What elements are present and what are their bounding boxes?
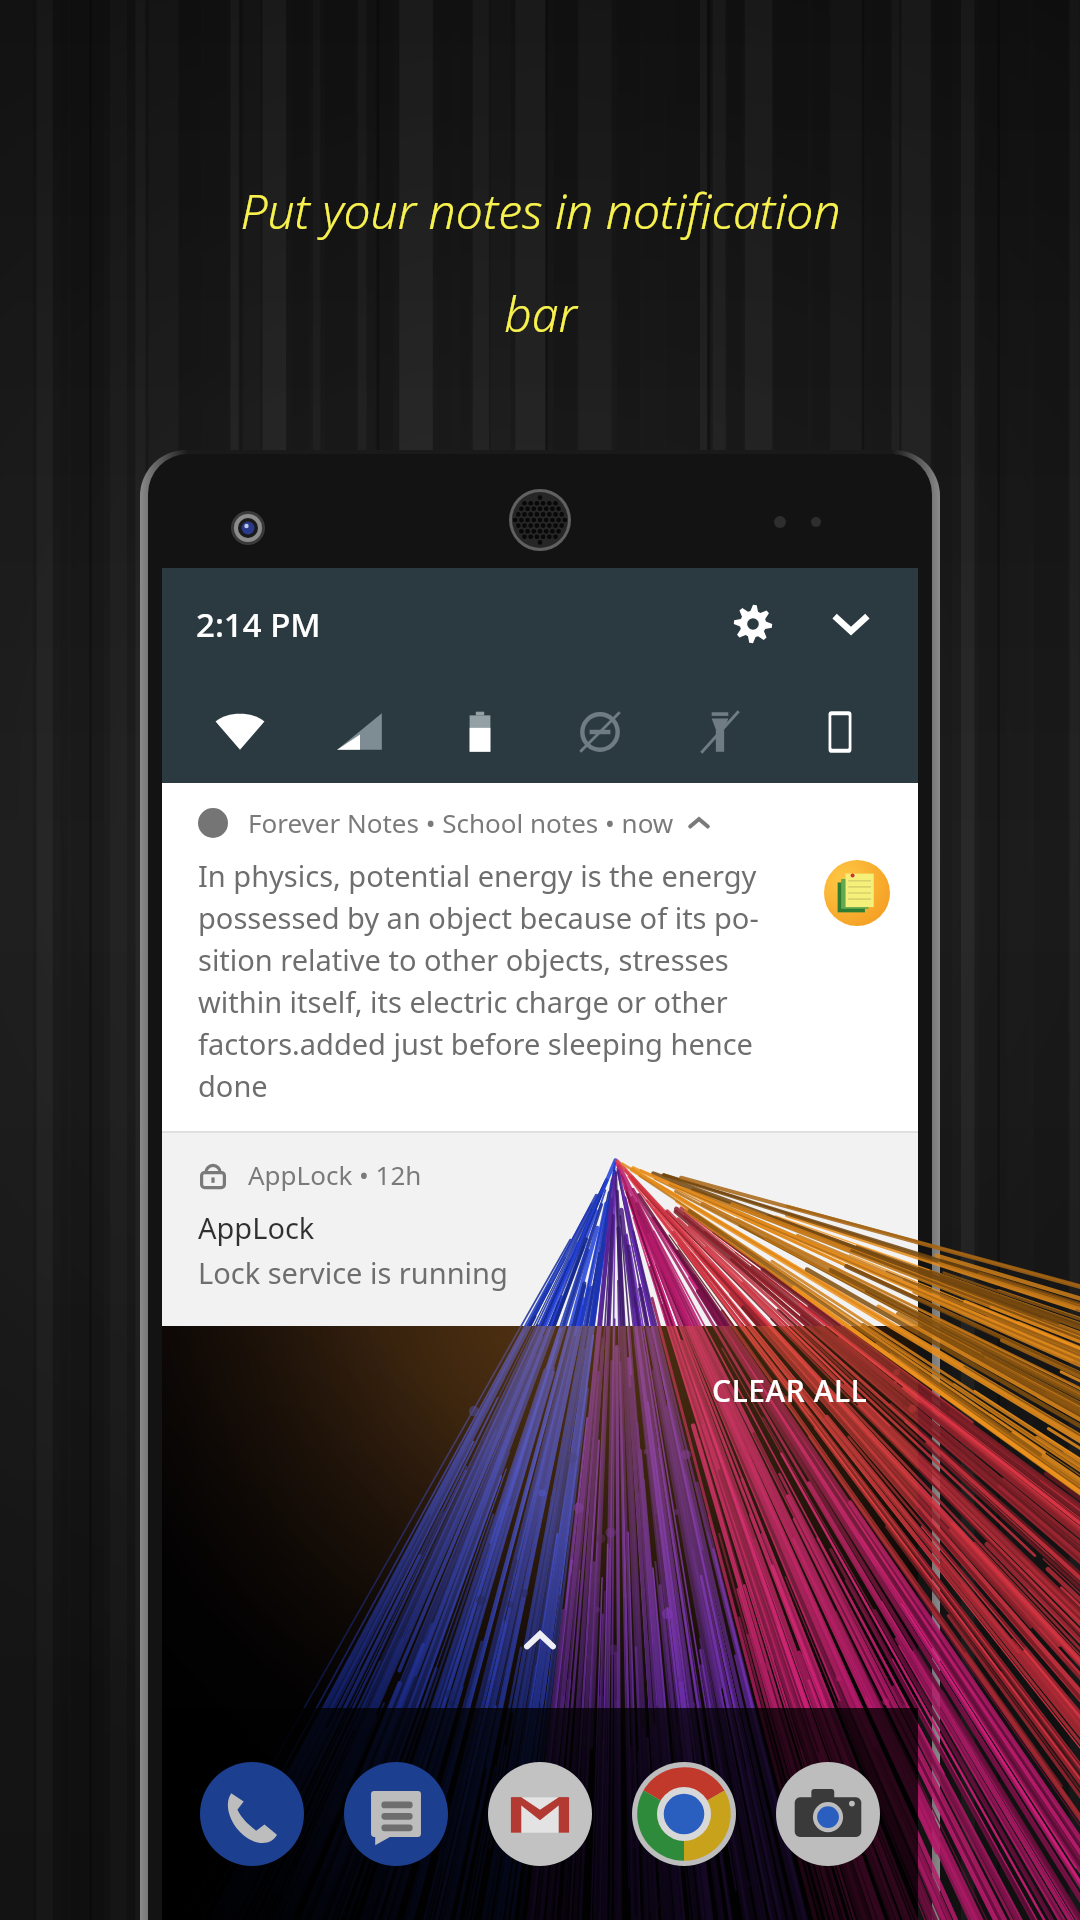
- button[interactable]: CLEAR ALL: [700, 1356, 880, 1425]
- button[interactable]: Mobile signal: [300, 680, 420, 783]
- button[interactable]: Wi-Fi: [180, 680, 300, 783]
- button[interactable]: Forever Notes • School notes • now: [162, 783, 918, 1131]
- staticText: Lock service is running: [198, 1253, 508, 1292]
- button[interactable]: Flashlight: [660, 680, 780, 783]
- button[interactable]: Gmail: [480, 1754, 600, 1874]
- staticText: CLEAR ALL: [712, 1370, 868, 1411]
- staticText: Forever Notes • School notes • now: [248, 805, 674, 840]
- button[interactable]: AppLock • 12h: [162, 1133, 918, 1326]
- button[interactable]: Battery: [420, 680, 540, 783]
- staticText: 2:14 PM: [196, 602, 321, 647]
- staticText: AppLock: [198, 1208, 315, 1247]
- button[interactable]: Messages: [336, 1754, 456, 1874]
- button[interactable]: Collapse shade: [513, 1614, 567, 1668]
- button[interactable]: Auto rotate: [780, 680, 900, 783]
- staticText: In physics, potential energy is the ener…: [198, 856, 810, 1105]
- staticText: bar: [504, 281, 577, 346]
- staticText: Put your notes in notification: [240, 178, 841, 243]
- button[interactable]: Camera: [768, 1754, 888, 1874]
- button[interactable]: Expand quick settings: [814, 587, 888, 661]
- button[interactable]: Phone: [192, 1754, 312, 1874]
- button[interactable]: Settings: [716, 587, 790, 661]
- button[interactable]: Chrome: [624, 1754, 744, 1874]
- staticText: AppLock • 12h: [248, 1157, 422, 1192]
- button[interactable]: Do not disturb: [540, 680, 660, 783]
